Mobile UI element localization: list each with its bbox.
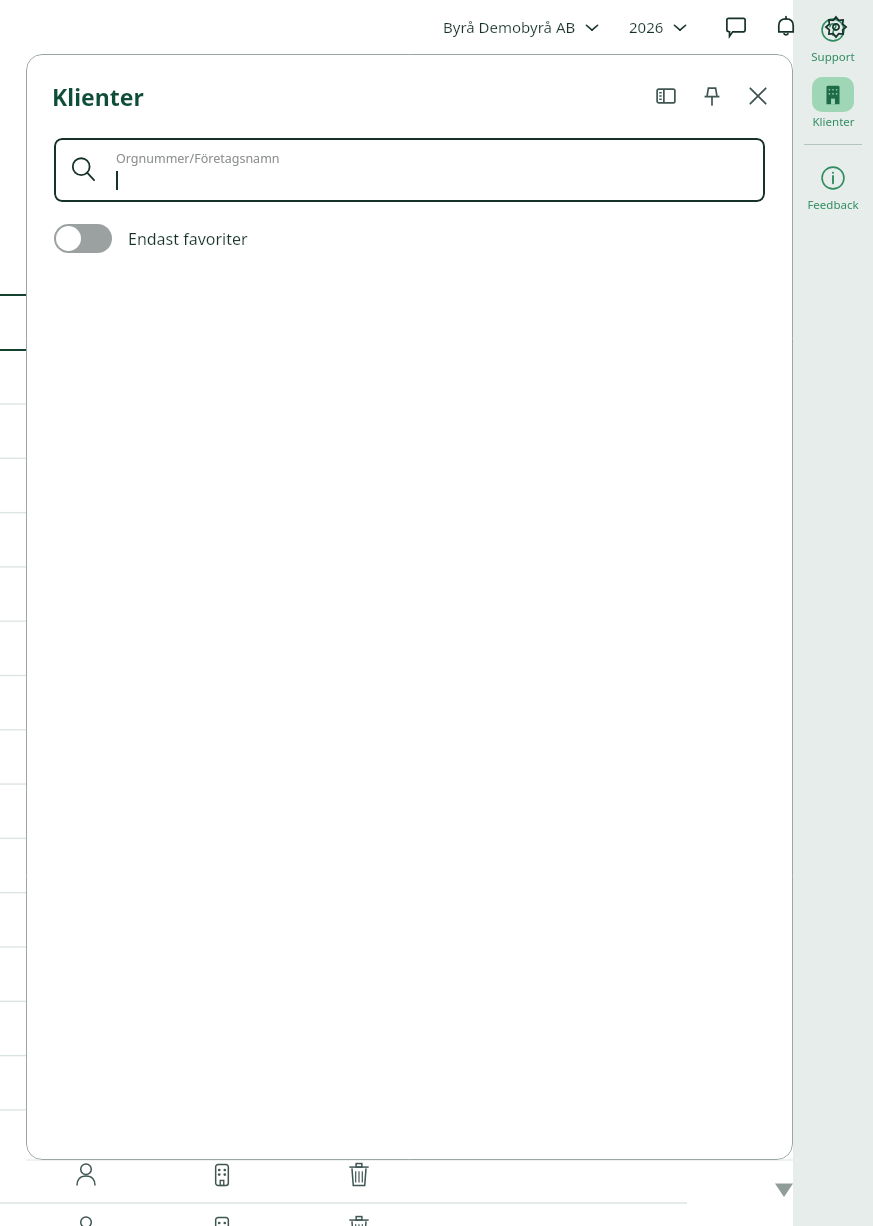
staticText: Endast favoriter (128, 228, 248, 250)
button[interactable]: Klienter (793, 75, 873, 132)
button[interactable]: Settings (817, 8, 855, 46)
button[interactable]: Orgnummer/Företagsnamn (54, 138, 765, 202)
staticText: Support (811, 49, 855, 65)
button[interactable]: Close (739, 77, 777, 115)
button[interactable]: Toggle side panel (647, 77, 685, 115)
staticText: Klienter (52, 81, 144, 112)
staticText: Feedback (807, 197, 859, 213)
staticText: Orgnummer/Företagsnamn (116, 150, 280, 167)
button[interactable]: Feedback (793, 158, 873, 215)
staticText: Klienter (812, 114, 855, 130)
button[interactable]: Notifications (767, 8, 805, 46)
button[interactable]: Byrå Demobyrå AB (437, 9, 605, 45)
button[interactable]: 2026 (623, 9, 693, 45)
button[interactable]: Support (793, 10, 873, 67)
staticText: 2026 (629, 17, 664, 37)
button[interactable]: Endast favoriter (54, 224, 248, 253)
button[interactable]: Pin (693, 77, 731, 115)
staticText: Byrå Demobyrå AB (443, 17, 576, 37)
button[interactable]: Messages (717, 8, 755, 46)
